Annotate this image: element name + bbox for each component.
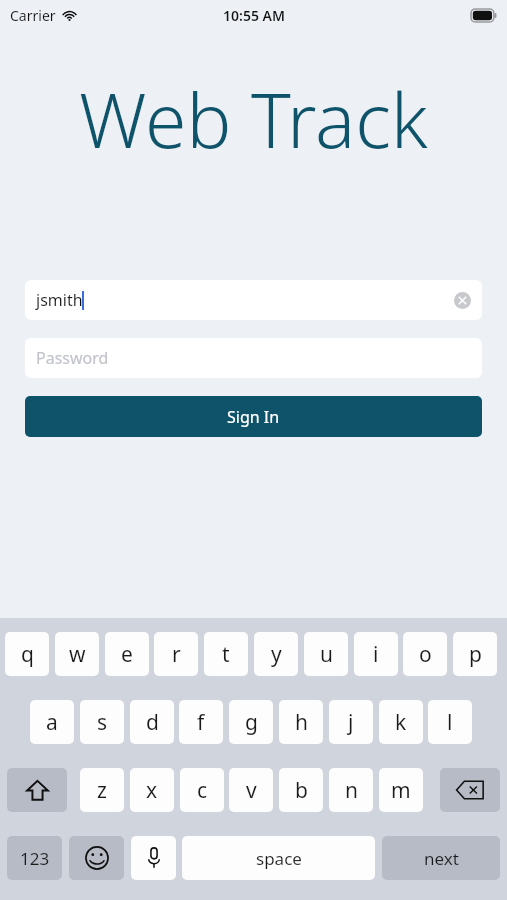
staticText: p xyxy=(469,640,482,669)
staticText: t xyxy=(222,640,230,669)
staticText: next xyxy=(424,847,459,870)
staticText: a xyxy=(46,708,58,737)
button[interactable]: p xyxy=(453,632,497,676)
staticText: b xyxy=(295,776,308,805)
staticText: Password xyxy=(36,347,109,369)
button[interactable]: d xyxy=(130,700,174,744)
staticText: l xyxy=(447,708,453,737)
button[interactable]: k xyxy=(379,700,423,744)
staticText: g xyxy=(245,708,258,737)
staticText: n xyxy=(345,776,358,805)
button[interactable]: s xyxy=(80,700,124,744)
button[interactable]: jsmith xyxy=(25,280,482,320)
button[interactable]: b xyxy=(279,768,323,812)
button[interactable]: o xyxy=(403,632,447,676)
button[interactable]: g xyxy=(229,700,273,744)
staticText: f xyxy=(197,708,205,737)
button[interactable]: Password xyxy=(25,338,482,378)
staticText: 123 xyxy=(20,847,50,870)
button[interactable]: u xyxy=(304,632,348,676)
button[interactable]: Shift xyxy=(7,768,67,812)
staticText: w xyxy=(69,640,86,669)
staticText: k xyxy=(395,708,407,737)
staticText: c xyxy=(197,776,208,805)
staticText: m xyxy=(391,776,411,805)
staticText: Web Track xyxy=(79,68,428,170)
staticText: i xyxy=(373,640,379,669)
staticText: y xyxy=(271,640,282,669)
staticText: z xyxy=(97,776,107,805)
staticText: j xyxy=(348,708,354,737)
staticText: jsmith xyxy=(36,289,83,311)
button[interactable]: m xyxy=(379,768,423,812)
button[interactable]: a xyxy=(30,700,74,744)
button[interactable]: space xyxy=(182,836,375,880)
staticText: 10:55 AM xyxy=(223,6,285,25)
button[interactable]: i xyxy=(354,632,398,676)
staticText: s xyxy=(97,708,108,737)
staticText: Sign In xyxy=(227,406,280,428)
button[interactable]: c xyxy=(180,768,224,812)
button[interactable]: Clear text xyxy=(452,290,472,310)
button[interactable]: l xyxy=(428,700,472,744)
button[interactable]: f xyxy=(179,700,223,744)
button[interactable]: r xyxy=(154,632,198,676)
staticText: o xyxy=(419,640,432,669)
staticText: h xyxy=(295,708,308,737)
staticText: q xyxy=(21,640,34,669)
staticText: u xyxy=(320,640,333,669)
button[interactable]: next xyxy=(382,836,500,880)
button[interactable]: j xyxy=(329,700,373,744)
button[interactable]: v xyxy=(229,768,273,812)
button[interactable]: Dictate xyxy=(131,836,176,880)
button[interactable]: Sign In xyxy=(25,396,482,437)
button[interactable]: z xyxy=(80,768,124,812)
staticText: v xyxy=(246,776,257,805)
button[interactable]: w xyxy=(55,632,99,676)
staticText: d xyxy=(146,708,159,737)
button[interactable]: n xyxy=(329,768,373,812)
button[interactable]: q xyxy=(5,632,49,676)
button[interactable]: t xyxy=(204,632,248,676)
button[interactable]: Emoji xyxy=(69,836,124,880)
button[interactable]: y xyxy=(254,632,298,676)
staticText: Carrier xyxy=(10,6,56,25)
staticText: r xyxy=(172,640,181,669)
button[interactable]: e xyxy=(105,632,149,676)
button[interactable]: h xyxy=(279,700,323,744)
staticText: x xyxy=(146,776,158,805)
button[interactable]: x xyxy=(130,768,174,812)
button[interactable]: 123 xyxy=(7,836,62,880)
button[interactable]: Backspace xyxy=(440,768,500,812)
staticText: e xyxy=(121,640,133,669)
staticText: space xyxy=(256,847,302,870)
